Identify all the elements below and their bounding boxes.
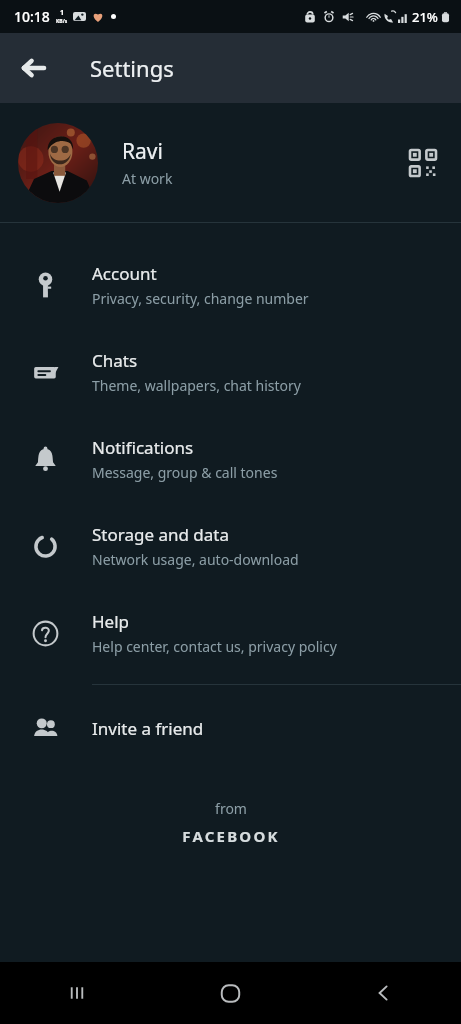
staticText: Ravi	[122, 137, 163, 166]
button[interactable]: QR code	[401, 141, 445, 185]
staticText: Theme, wallpapers, chat history	[92, 376, 301, 395]
button[interactable]: Ravi	[0, 103, 461, 222]
button[interactable]: Invite a friend	[0, 693, 461, 763]
staticText: Help center, contact us, privacy policy	[92, 637, 337, 656]
staticText: Network usage, auto-download	[92, 550, 299, 569]
staticText: KB/s	[56, 18, 68, 25]
staticText: Chats	[92, 349, 138, 372]
button[interactable]: Recent apps	[0, 962, 153, 1024]
button[interactable]: Back	[307, 962, 461, 1024]
staticText: 10:18	[14, 7, 50, 26]
staticText: Storage and data	[92, 523, 230, 546]
staticText: FACEBOOK	[182, 826, 280, 846]
button[interactable]: Back	[10, 44, 58, 92]
staticText: Invite a friend	[92, 717, 204, 740]
staticText: At work	[122, 169, 173, 188]
staticText: 21%	[412, 8, 438, 26]
button[interactable]: Help	[0, 589, 461, 676]
button[interactable]: Storage and data	[0, 502, 461, 589]
button[interactable]: Account	[0, 241, 461, 328]
staticText: Privacy, security, change number	[92, 289, 309, 308]
button[interactable]: Notifications	[0, 415, 461, 502]
staticText: Settings	[90, 53, 174, 83]
staticText: Account	[92, 262, 157, 285]
button[interactable]: Chats	[0, 328, 461, 415]
button[interactable]: Home	[153, 962, 307, 1024]
staticText: Notifications	[92, 436, 194, 459]
staticText: Message, group & call tones	[92, 463, 278, 482]
staticText: from	[215, 799, 247, 818]
staticText: 1	[60, 8, 65, 18]
staticText: Help	[92, 610, 130, 633]
